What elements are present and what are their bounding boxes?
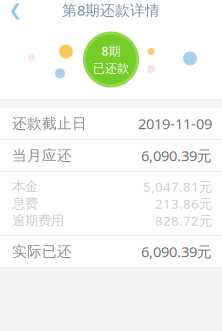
staticText: 828.72元	[155, 212, 212, 229]
staticText: 第8期还款详情	[62, 0, 160, 20]
staticText: 实际已还	[12, 242, 72, 260]
button[interactable]: Back	[0, 0, 30, 20]
staticText: 已还款	[93, 61, 129, 76]
staticText: 8期	[101, 43, 120, 59]
staticText: 5,047.81元	[143, 178, 212, 195]
staticText: 当月应还	[12, 146, 72, 164]
staticText: 逾期费用	[12, 212, 64, 229]
staticText: 6,090.39元	[141, 146, 212, 165]
staticText: 6,090.39元	[141, 242, 212, 261]
staticText: 息费	[12, 195, 38, 212]
staticText: 2019-11-09	[138, 114, 212, 133]
staticText: 本金	[12, 178, 38, 195]
staticText: 213.86元	[155, 195, 212, 212]
staticText: 还款截止日	[12, 114, 87, 132]
staticText: ❮	[8, 1, 21, 19]
